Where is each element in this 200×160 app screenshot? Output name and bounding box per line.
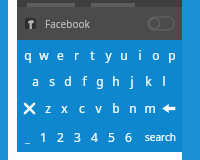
button[interactable]: j <box>124 68 140 94</box>
staticText: y <box>105 47 112 63</box>
staticText: 4 <box>91 129 98 145</box>
staticText: l <box>162 73 166 89</box>
button[interactable]: k <box>140 68 156 94</box>
staticText: x <box>61 100 68 116</box>
staticText: t <box>90 47 95 63</box>
button[interactable]: v <box>90 94 107 122</box>
button[interactable]: search <box>141 122 179 152</box>
button[interactable]: f <box>76 68 92 94</box>
button[interactable]: 2 <box>52 122 69 152</box>
staticText: 6 <box>125 129 132 145</box>
staticText: f <box>82 73 87 89</box>
button[interactable]: c <box>73 94 90 122</box>
button[interactable]: q <box>19 41 36 68</box>
staticText: r <box>74 47 79 63</box>
button[interactable]: h <box>108 68 124 94</box>
button[interactable]: i <box>132 41 148 68</box>
button[interactable]: n <box>124 94 141 122</box>
button[interactable]: 5 <box>103 122 120 152</box>
other: Facebook <box>25 18 36 29</box>
staticText: q <box>24 47 32 63</box>
staticText: search <box>145 130 176 144</box>
staticText: k <box>145 73 152 89</box>
button[interactable]: l <box>156 68 172 94</box>
staticText: g <box>96 73 104 89</box>
staticText: e <box>57 47 64 63</box>
button[interactable]: t <box>84 41 100 68</box>
button[interactable]: x <box>56 94 73 122</box>
staticText: 5 <box>108 129 115 145</box>
button[interactable]: y <box>100 41 116 68</box>
staticText: v <box>95 100 102 116</box>
staticText: m <box>144 100 156 116</box>
staticText: u <box>120 47 128 63</box>
button[interactable]: o <box>148 41 164 68</box>
button[interactable]: 3 <box>69 122 86 152</box>
staticText: n <box>129 100 137 116</box>
button[interactable]: s <box>44 68 60 94</box>
staticText: 1 <box>40 129 47 145</box>
button[interactable]: a <box>27 68 44 94</box>
button[interactable]: m <box>141 94 158 122</box>
staticText: 3 <box>74 129 81 145</box>
button[interactable]: r <box>68 41 84 68</box>
button[interactable]: p <box>164 41 180 68</box>
button[interactable]: Facebook toggle <box>148 17 174 30</box>
button[interactable]: d <box>60 68 76 94</box>
button[interactable]: z <box>40 94 56 122</box>
staticText: o <box>152 47 160 63</box>
button[interactable]: Close keyboard <box>19 94 40 122</box>
staticText: b <box>112 100 120 116</box>
button[interactable]: Backspace <box>158 94 180 122</box>
button[interactable]: g <box>92 68 108 94</box>
button[interactable]: 6 <box>120 122 137 152</box>
staticText: a <box>32 73 39 89</box>
staticText: Facebook <box>45 17 90 31</box>
button[interactable]: _ <box>20 122 35 152</box>
staticText: h <box>112 73 120 89</box>
button[interactable]: 1 <box>35 122 52 152</box>
button[interactable]: e <box>52 41 68 68</box>
staticText: z <box>45 100 51 116</box>
staticText: c <box>79 100 85 116</box>
staticText: s <box>49 73 55 89</box>
staticText: i <box>138 47 142 63</box>
button[interactable]: 4 <box>86 122 103 152</box>
staticText: w <box>39 47 49 63</box>
staticText: 2 <box>57 129 64 145</box>
staticText: j <box>130 73 134 89</box>
button[interactable]: b <box>107 94 124 122</box>
staticText: p <box>168 47 176 63</box>
button[interactable]: u <box>116 41 132 68</box>
button[interactable]: w <box>36 41 52 68</box>
staticText: d <box>64 73 72 89</box>
button[interactable]: Facebook <box>17 7 182 40</box>
staticText: _ <box>25 130 30 145</box>
